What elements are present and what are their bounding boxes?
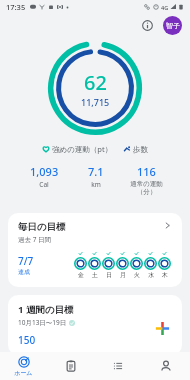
staticText: 土 (92, 271, 98, 279)
staticText: 1 週間の目標 (18, 303, 74, 316)
staticText: 毎日の目標 (18, 221, 66, 233)
button[interactable]: 1 週間の目標 (8, 295, 182, 355)
staticText: 水 (148, 271, 154, 279)
staticText: 強めの運動（pt） (52, 144, 113, 154)
staticText: 智子 (166, 21, 180, 30)
staticText: 連成 (18, 268, 30, 276)
staticText: 火 (134, 271, 140, 279)
staticText: 1,093 (30, 164, 59, 179)
staticText: 金 (78, 271, 84, 279)
staticText: km (91, 180, 101, 189)
staticText: 月 (120, 271, 126, 279)
staticText: 7.1 (88, 164, 104, 179)
button[interactable]: Add activity (147, 313, 177, 343)
button[interactable]: Journal (47, 352, 94, 380)
button[interactable]: Account (163, 16, 182, 35)
button[interactable]: Profile (142, 352, 190, 380)
staticText: 歩数 (133, 145, 148, 154)
staticText: 日 (106, 271, 112, 279)
staticText: Cal (39, 180, 49, 189)
staticText: 10月13日〜19日 (18, 318, 67, 327)
staticText: 木 (162, 271, 168, 279)
staticText: 150 (18, 333, 36, 347)
button[interactable]: Browse (94, 352, 142, 380)
staticText: 過去 7 日間 (18, 235, 52, 244)
staticText: 62 (84, 69, 107, 96)
staticText: 通常の運動 （分） (130, 180, 163, 196)
staticText: ホーム (14, 369, 33, 377)
staticText: 11,715 (81, 96, 110, 108)
staticText: 4G (161, 4, 169, 11)
staticText: 17:35 (6, 2, 26, 12)
button[interactable]: ホーム (0, 352, 47, 380)
staticText: 7/7 (18, 254, 34, 268)
button[interactable]: 毎日の目標 (8, 213, 182, 287)
button[interactable]: Info (138, 16, 156, 34)
staticText: 116 (137, 164, 156, 179)
